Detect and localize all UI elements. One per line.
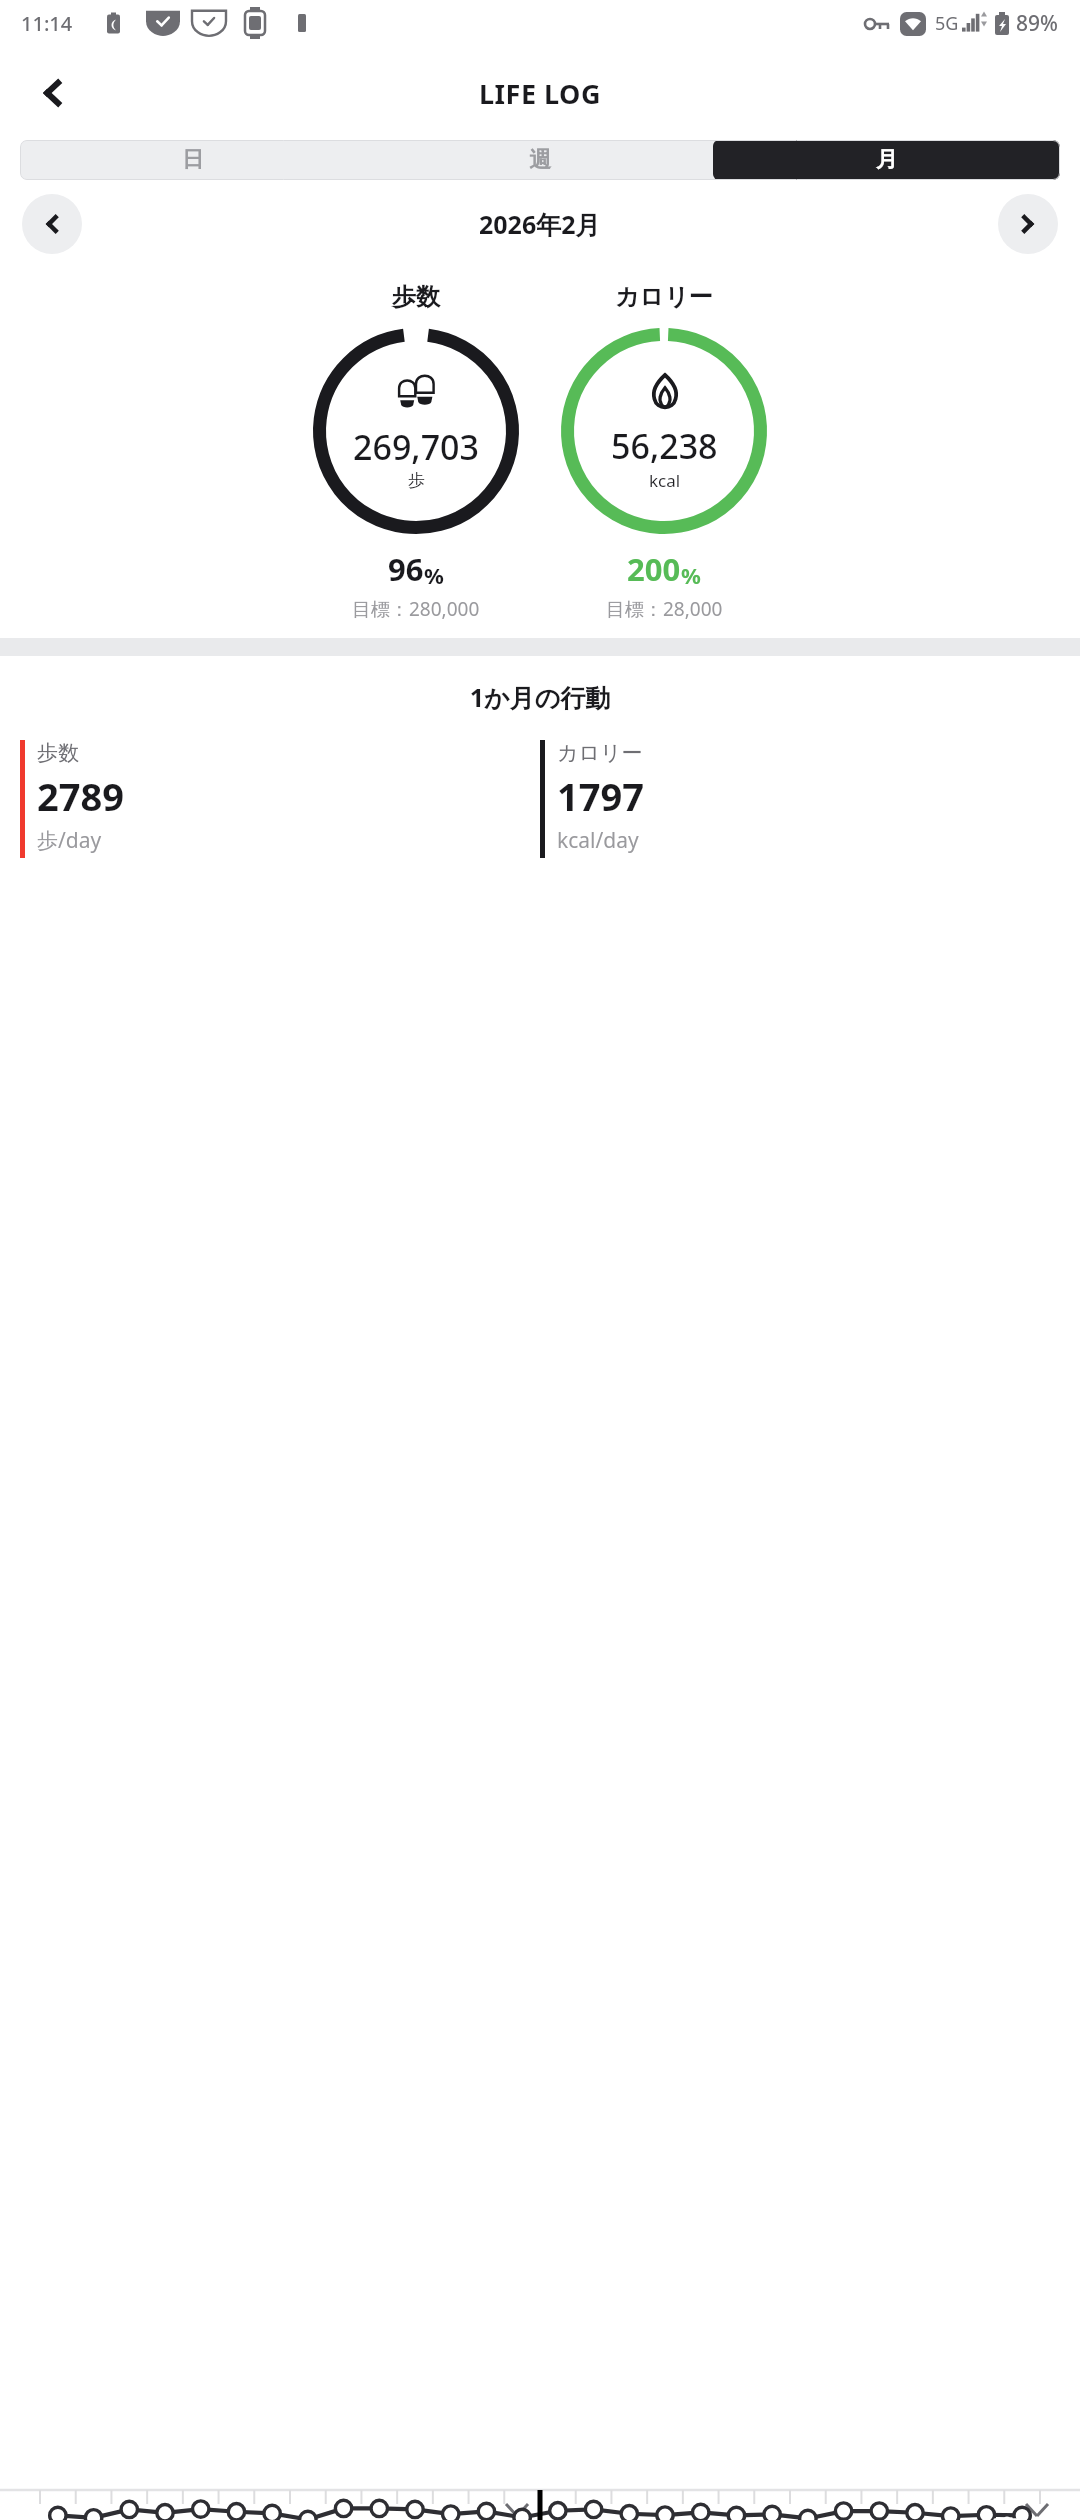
staticText: 歩/day [37,826,102,855]
staticText: カロリー [557,740,643,766]
staticText: kcal/day [557,826,639,855]
button[interactable]: カロリー [540,740,1060,2520]
staticText: kcal [649,469,681,492]
staticText: 269,703 [353,424,479,470]
button[interactable]: 週 [366,140,713,180]
staticText: % [424,560,444,590]
button[interactable]: Previous month [22,194,82,254]
staticText: 11:14 [21,10,73,37]
staticText: % [681,560,701,590]
button[interactable]: Next month [998,194,1058,254]
staticText: 200 [627,548,681,590]
staticText: 週 [529,146,551,174]
staticText: 96 [388,548,424,590]
button[interactable]: 歩数 [20,740,540,2520]
button[interactable]: Back [22,61,86,125]
staticText: 56,238 [611,423,718,469]
staticText: 目標：28,000 [606,596,723,622]
staticText: LIFE LOG [479,75,602,112]
button[interactable]: 日 [20,140,366,180]
staticText: 日 [182,146,204,174]
staticText: 1797 [557,770,644,822]
staticText: 目標：280,000 [352,596,480,622]
staticText: 2789 [37,770,124,822]
staticText: 2026年2月 [479,207,601,241]
staticText: 月 [876,146,898,174]
staticText: 89% [1016,9,1058,38]
staticText: 歩数 [392,282,440,312]
staticText: 歩 [408,470,425,491]
staticText: 歩数 [37,740,79,766]
staticText: 1か月の行動 [0,680,1080,714]
staticText: 5G [935,11,959,36]
button[interactable]: 月 [713,140,1060,180]
staticText: カロリー [615,282,713,312]
